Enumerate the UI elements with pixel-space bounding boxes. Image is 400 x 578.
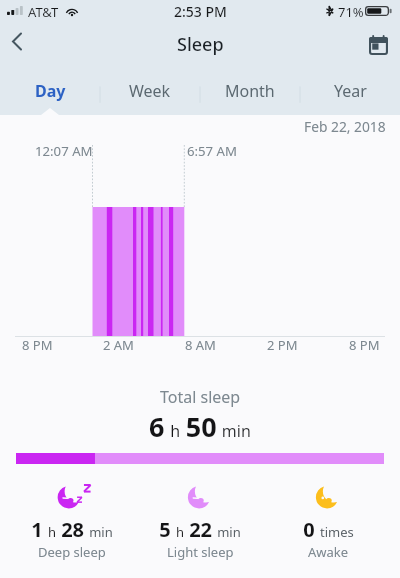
staticText: Light sleep [167,543,234,561]
staticText: 0 times [303,516,354,543]
staticText: 8 AM [185,336,216,354]
staticText: 8 PM [22,336,53,354]
button[interactable]: Month [200,70,300,111]
staticText: 2:53 PM [174,2,227,21]
staticText: Awake [308,543,349,561]
button[interactable]: Year [300,70,400,111]
staticText: Year [334,80,367,102]
button[interactable]: Day [0,70,100,111]
staticText: Day [35,80,66,102]
staticText: Deep sleep [38,543,106,561]
staticText: 71% [338,3,364,21]
staticText: 12:07 AM [35,142,93,160]
button[interactable]: 0 times [264,484,392,561]
staticText: Feb 22, 2018 [304,117,386,136]
staticText: Week [129,80,171,102]
button[interactable]: 1 h 28 min [8,484,136,561]
staticText: AT&T [28,3,59,21]
button[interactable]: Calendar [359,26,397,64]
staticText: 6 h 50 min [149,408,251,445]
staticText: Total sleep [160,386,241,408]
staticText: Sleep [177,32,224,57]
staticText: 6:57 AM [187,142,237,160]
staticText: 2 AM [103,336,134,354]
button[interactable]: 5 h 22 min [136,484,264,561]
button[interactable]: Week [100,70,200,111]
staticText: Month [225,80,275,102]
staticText: 2 PM [267,336,298,354]
staticText: 8 PM [349,336,380,354]
staticText: 5 h 22 min [159,516,241,543]
button[interactable]: Back [0,22,34,60]
staticText: 1 h 28 min [31,516,113,543]
